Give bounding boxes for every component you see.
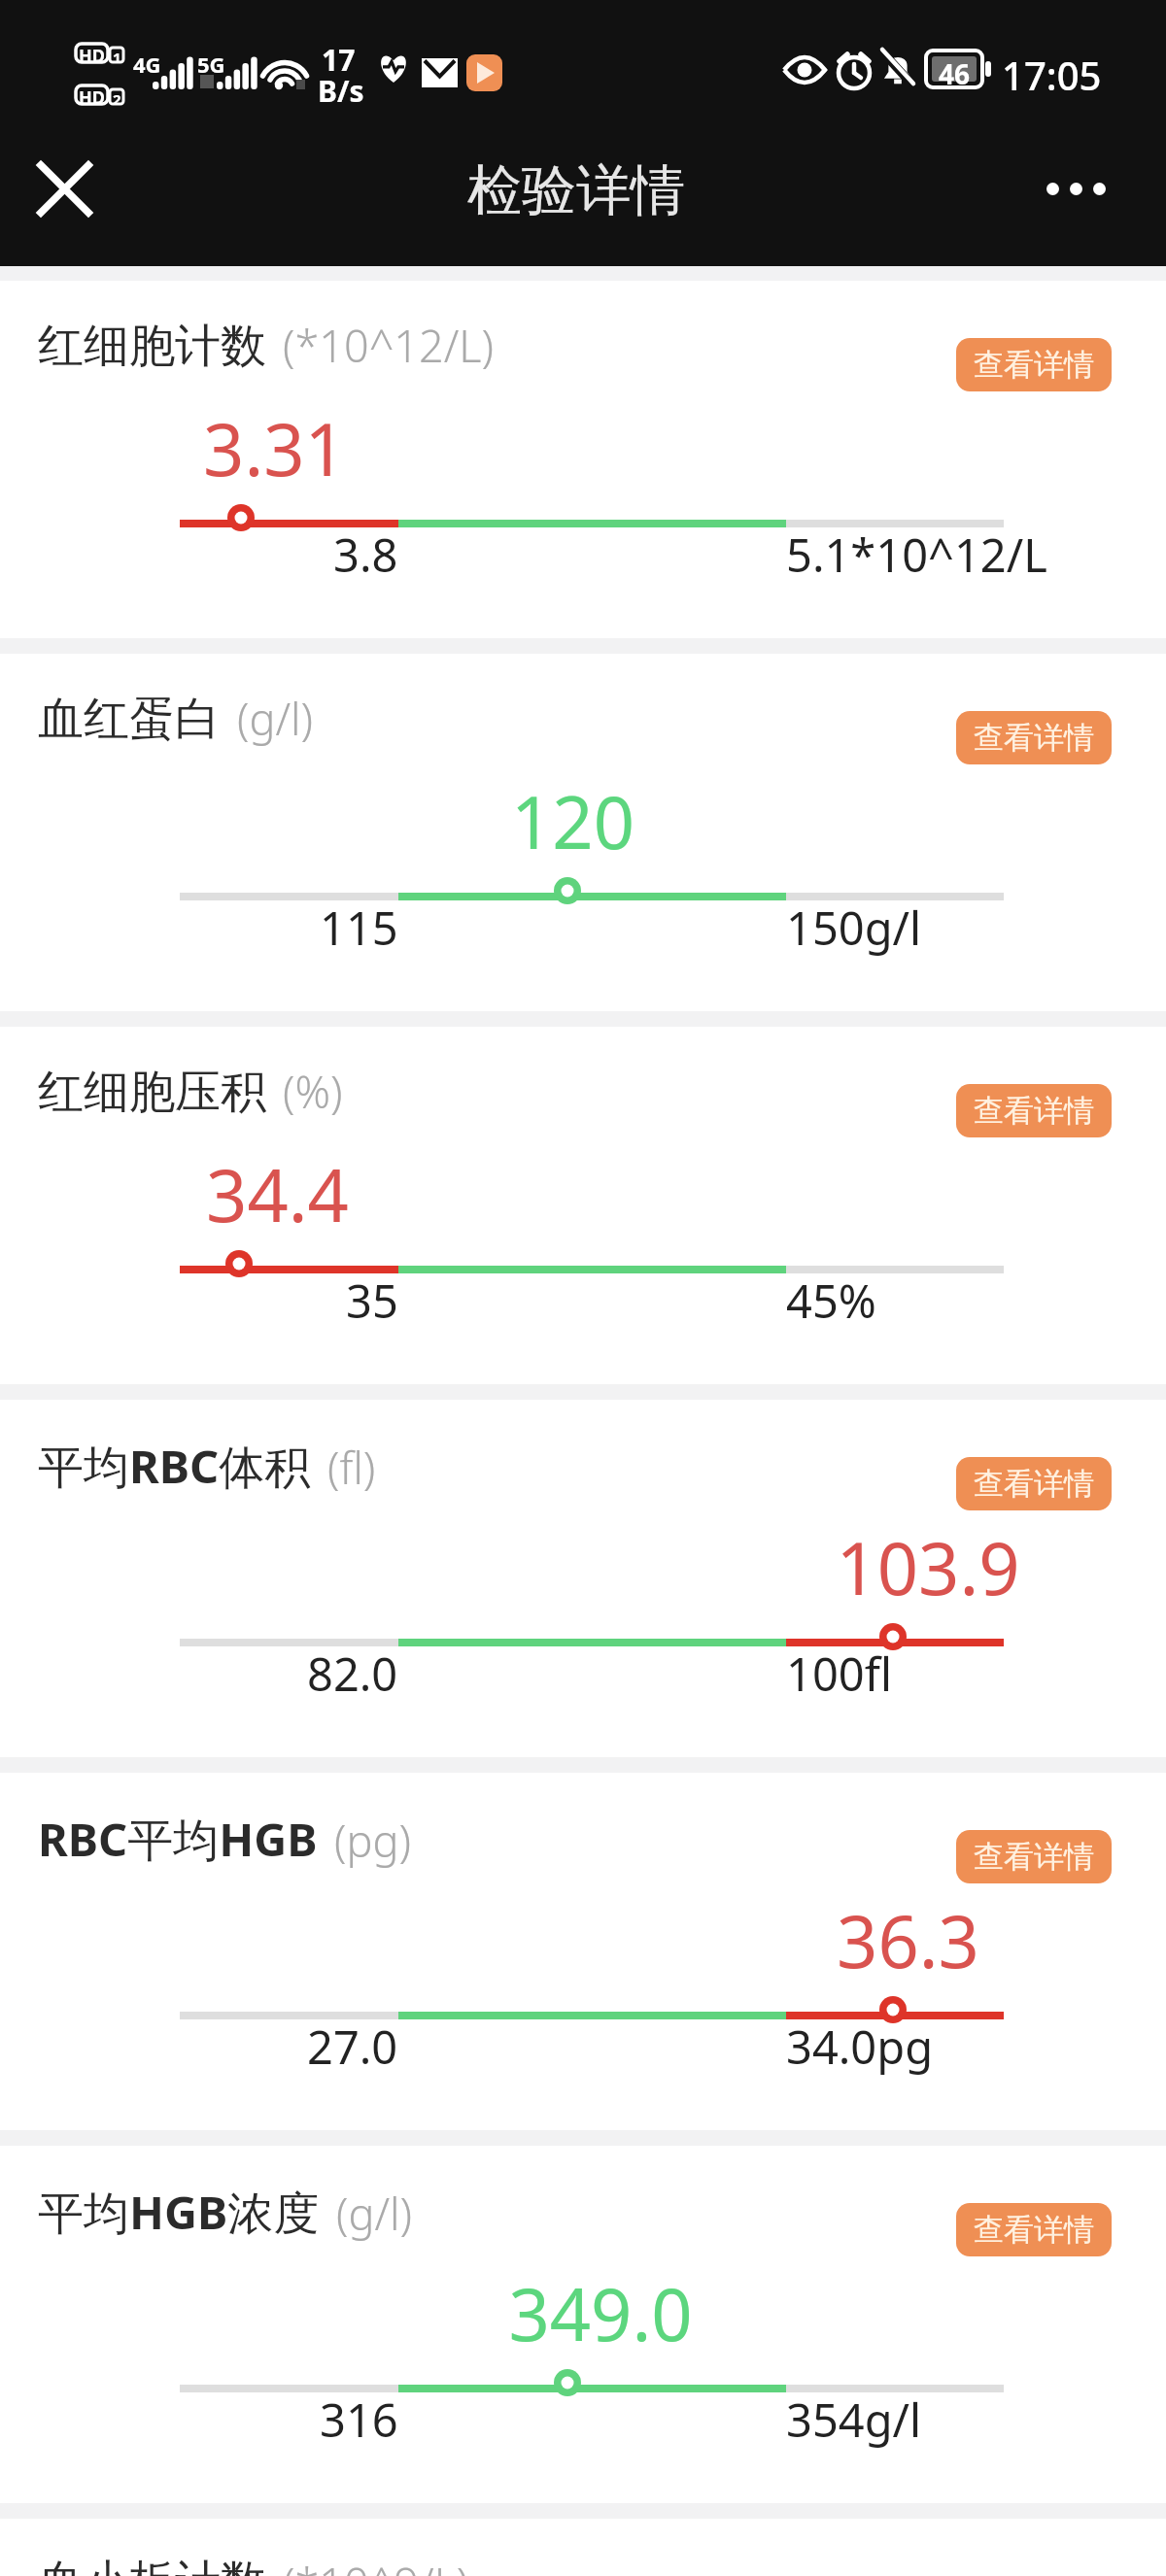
staticText: 17:05 <box>1002 49 1102 101</box>
staticText: 检验详情 <box>467 156 685 225</box>
staticText: 3.31 <box>203 399 346 497</box>
staticText: 316 <box>320 2389 398 2451</box>
staticText: 100fl <box>786 1643 892 1705</box>
staticText: (g/l) <box>336 2184 412 2243</box>
staticText: 27.0 <box>307 2016 398 2078</box>
staticText: (g/l) <box>237 689 313 748</box>
staticText: 45% <box>786 1270 876 1332</box>
staticText: 红细胞计数 <box>38 318 266 375</box>
staticText: HD <box>79 85 105 104</box>
button[interactable]: 查看详情 <box>956 338 1112 391</box>
staticText: 查看详情 <box>974 1092 1094 1130</box>
staticText: 35 <box>346 1270 398 1332</box>
staticText: 平均HGB浓度 <box>38 2181 320 2243</box>
staticText: 34.4 <box>206 1145 349 1243</box>
staticText: 103.9 <box>836 1518 1020 1616</box>
button[interactable]: Close <box>25 150 103 227</box>
staticText: 红细胞压积 <box>38 1064 266 1121</box>
staticText: 5G <box>197 50 225 79</box>
button[interactable]: 查看详情 <box>956 2203 1112 2256</box>
staticText: 5.1*10^12/L <box>786 524 1047 586</box>
staticText: 查看详情 <box>974 2211 1094 2249</box>
button[interactable]: 红细胞计数 <box>0 281 1166 638</box>
staticText: 120 <box>511 772 634 870</box>
staticText: 34.0pg <box>786 2016 934 2078</box>
staticText: HD <box>79 44 105 62</box>
button[interactable]: More options <box>1032 154 1119 222</box>
staticText: 血红蛋白 <box>38 691 221 748</box>
button[interactable]: 平均RBC体积 <box>0 1400 1166 1757</box>
button[interactable]: 血小板计数 <box>0 2519 1166 2576</box>
staticText: (*10^12/L) <box>283 316 494 375</box>
staticText: 血小板计数 <box>38 2554 266 2576</box>
button[interactable]: 查看详情 <box>956 1830 1112 1883</box>
staticText: 36.3 <box>837 1891 979 1989</box>
button[interactable]: RBC平均HGB <box>0 1773 1166 2130</box>
staticText: (fl) <box>327 1438 376 1497</box>
staticText: 46 <box>939 55 971 92</box>
staticText: 查看详情 <box>974 346 1094 384</box>
staticText: 4G <box>133 50 161 79</box>
staticText: 17 <box>322 40 356 80</box>
staticText: 115 <box>320 897 398 959</box>
staticText: 平均RBC体积 <box>38 1435 311 1497</box>
staticText: 82.0 <box>307 1643 398 1705</box>
staticText: (%) <box>283 1062 343 1121</box>
staticText: (*10^9/L) <box>283 2554 469 2576</box>
staticText: (pg) <box>334 1811 411 1870</box>
button[interactable]: 平均HGB浓度 <box>0 2146 1166 2503</box>
staticText: 349.0 <box>508 2264 693 2362</box>
staticText: 查看详情 <box>974 1838 1094 1876</box>
staticText: 2 <box>113 89 121 104</box>
staticText: 150g/l <box>786 897 922 959</box>
button[interactable]: 血红蛋白 <box>0 654 1166 1011</box>
button[interactable]: 查看详情 <box>956 711 1112 764</box>
staticText: 3.8 <box>333 524 398 586</box>
staticText: B/s <box>318 71 364 111</box>
staticText: 354g/l <box>786 2389 922 2451</box>
button[interactable]: 红细胞压积 <box>0 1027 1166 1384</box>
button[interactable]: 查看详情 <box>956 1457 1112 1510</box>
staticText: 1 <box>113 48 121 62</box>
staticText: 查看详情 <box>974 1465 1094 1503</box>
staticText: 查看详情 <box>974 719 1094 757</box>
button[interactable]: 查看详情 <box>956 1084 1112 1137</box>
staticText: RBC平均HGB <box>38 1808 318 1870</box>
